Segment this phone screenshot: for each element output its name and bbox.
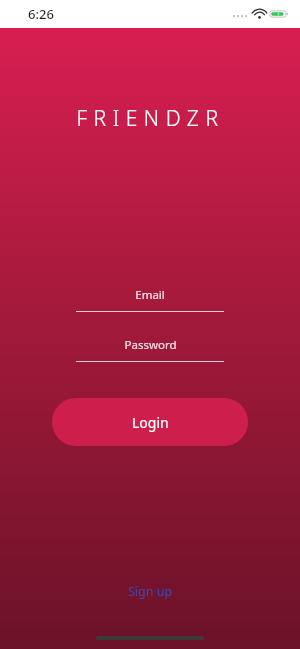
- button[interactable]: Login: [52, 398, 248, 446]
- button[interactable]: Email: [76, 284, 224, 312]
- staticText: Password: [124, 337, 177, 353]
- staticText: Login: [132, 413, 169, 432]
- staticText: Email: [135, 287, 165, 303]
- button[interactable]: Password: [76, 334, 224, 362]
- staticText: FRIENDZR: [76, 104, 225, 133]
- staticText: 6:26: [28, 5, 54, 23]
- staticText: Sign up: [128, 583, 173, 600]
- button[interactable]: Sign up: [118, 579, 183, 604]
